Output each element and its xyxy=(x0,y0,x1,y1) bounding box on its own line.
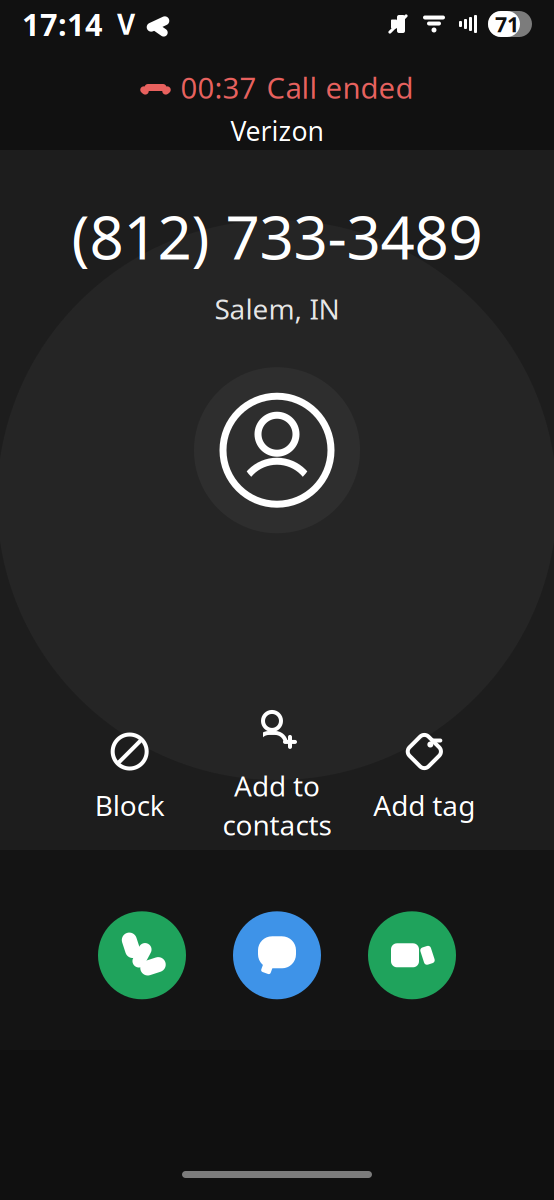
staticText: Add to xyxy=(234,767,320,804)
button[interactable]: Video call xyxy=(368,911,456,999)
staticText: Verizon xyxy=(230,113,323,148)
button[interactable]: Add tag xyxy=(351,724,498,830)
button[interactable]: Call xyxy=(98,911,186,999)
staticText: 00:37 xyxy=(180,68,256,107)
staticText: Add tag xyxy=(373,786,475,824)
staticText: V xyxy=(117,5,135,43)
staticText: 71 xyxy=(495,10,519,38)
staticText: Call ended xyxy=(266,68,413,107)
button[interactable]: Block xyxy=(56,724,203,830)
staticText: Block xyxy=(95,786,165,824)
staticText: 17:14 xyxy=(22,4,103,44)
staticText: Salem, IN xyxy=(214,290,339,327)
button[interactable]: Message xyxy=(233,911,321,999)
staticText: contacts xyxy=(222,806,331,843)
button[interactable]: Add to contacts xyxy=(203,705,351,849)
staticText: (812) 733-3489 xyxy=(71,196,482,276)
